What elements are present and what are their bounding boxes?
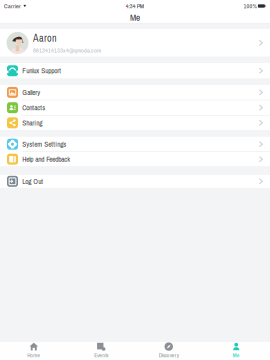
- staticText: 4:34 PM: [126, 2, 144, 10]
- staticText: Discovery: [159, 352, 179, 359]
- button[interactable]: Discovery: [135, 341, 202, 360]
- staticText: Gallery: [22, 88, 40, 97]
- staticText: Me: [233, 352, 240, 359]
- button[interactable]: Sharing: [0, 116, 270, 130]
- staticText: Funlux Support: [22, 66, 61, 76]
- button[interactable]: Contacts: [0, 100, 270, 115]
- button[interactable]: Home: [0, 341, 67, 360]
- button[interactable]: Events: [67, 341, 135, 360]
- button[interactable]: Funlux Support: [0, 63, 270, 78]
- button[interactable]: Aaron: [0, 29, 270, 57]
- button[interactable]: Help and Feedback: [0, 152, 270, 166]
- staticText: Log Out: [22, 176, 43, 186]
- staticText: Home: [27, 351, 40, 359]
- button[interactable]: System Settings: [0, 137, 270, 152]
- staticText: 8613414133x4@qmoda.com: [33, 46, 101, 54]
- staticText: Events: [94, 352, 108, 359]
- staticText: Me: [130, 11, 140, 24]
- button[interactable]: Me: [202, 341, 270, 360]
- staticText: Sharing: [22, 118, 42, 128]
- button[interactable]: Log Out: [0, 175, 270, 188]
- staticText: Help and Feedback: [22, 154, 70, 164]
- staticText: Aaron: [33, 31, 57, 45]
- button[interactable]: Gallery: [0, 85, 270, 100]
- staticText: Carrier: [4, 2, 21, 10]
- staticText: 100%: [243, 2, 256, 10]
- staticText: Contacts: [22, 103, 45, 113]
- staticText: System Settings: [22, 139, 66, 149]
